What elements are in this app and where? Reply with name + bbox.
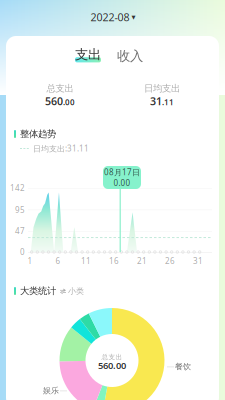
staticText: 21 <box>137 256 147 266</box>
staticText: 日均支出:31.11 <box>33 143 89 154</box>
staticText: 31 <box>193 256 203 266</box>
staticText: 08月17日 <box>104 167 140 177</box>
staticText: 0.00 <box>113 177 130 188</box>
staticText: 大类统计 <box>20 285 56 297</box>
staticText: ▾ <box>131 12 135 22</box>
staticText: 560 <box>45 94 63 108</box>
staticText: 整体趋势 <box>20 128 56 140</box>
staticText: 小类 <box>68 286 84 296</box>
staticText: .00 <box>63 97 75 107</box>
staticText: 日均支出 <box>144 83 180 94</box>
staticText: 娱乐 <box>43 386 59 395</box>
staticText: 支出 <box>75 46 101 63</box>
button[interactable]: 小类 <box>60 286 84 296</box>
staticText: 0 <box>20 247 25 257</box>
staticText: 26 <box>165 256 175 266</box>
staticText: 142 <box>10 183 25 193</box>
staticText: 95 <box>15 205 25 215</box>
staticText: 2022-08 <box>90 10 129 24</box>
staticText: 餐饮 <box>175 362 191 371</box>
staticText: 47 <box>15 226 25 236</box>
button[interactable]: 支出 <box>72 47 104 65</box>
staticText: 收入 <box>117 48 143 64</box>
staticText: 6 <box>55 256 60 266</box>
staticText: 31 <box>150 94 162 108</box>
staticText: 560.00 <box>98 359 126 372</box>
button[interactable]: 收入 <box>114 48 146 63</box>
staticText: .11 <box>162 97 174 107</box>
staticText: 总支出 <box>101 353 122 361</box>
staticText: 1 <box>27 256 32 266</box>
staticText: 11 <box>81 256 91 266</box>
staticText: 总支出 <box>46 83 73 94</box>
button[interactable]: 2022-08 <box>76 10 150 24</box>
staticText: 16 <box>109 256 119 266</box>
